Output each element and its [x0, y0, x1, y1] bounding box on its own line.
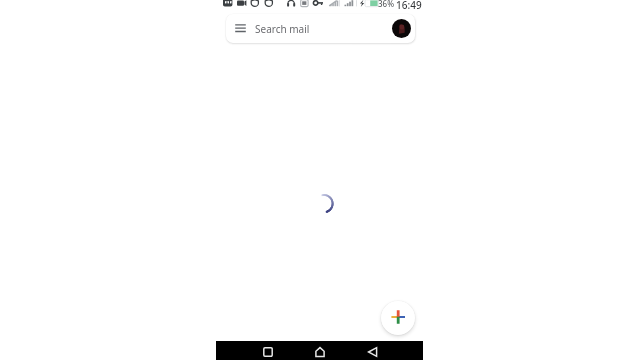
button[interactable]: Open navigation drawer: [226, 14, 415, 43]
button[interactable]: Open navigation drawer: [235, 14, 246, 43]
staticText: Search mail: [255, 22, 310, 36]
staticText: 16:49: [396, 0, 422, 9]
button[interactable]: Back: [352, 341, 394, 360]
button[interactable]: Compose: [381, 301, 415, 335]
button[interactable]: Home: [299, 341, 341, 360]
button[interactable]: Recents: [247, 341, 289, 360]
button[interactable]: Account: [392, 19, 411, 38]
staticText: 36%: [378, 0, 394, 9]
